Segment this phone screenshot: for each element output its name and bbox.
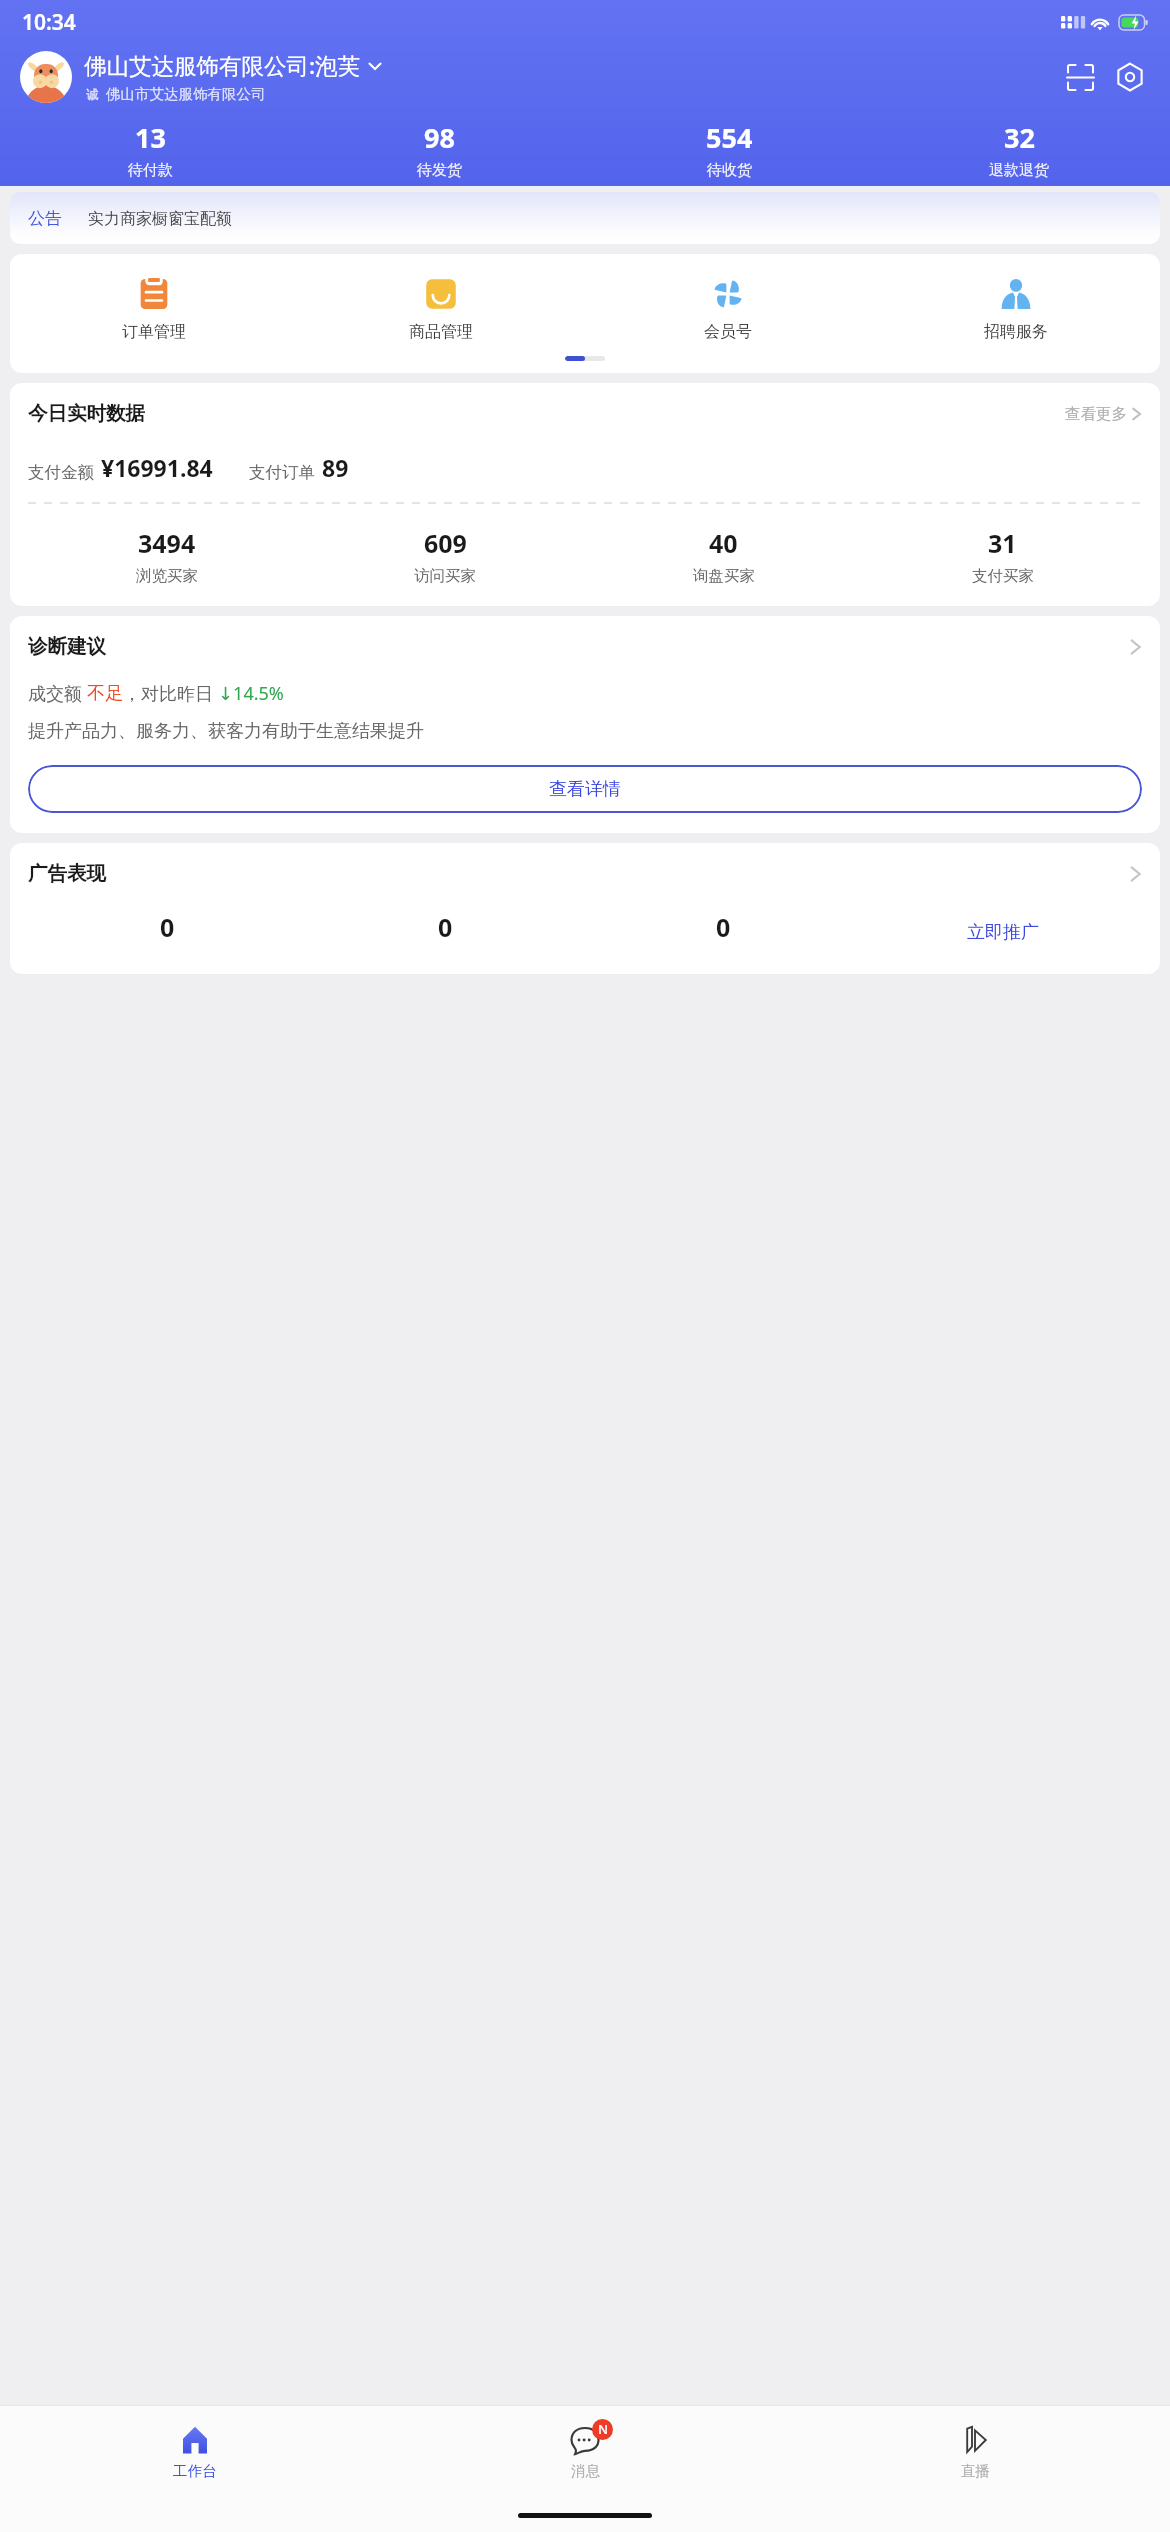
staticText: 浏览买家 [136,566,198,586]
staticText: N [598,2421,608,2438]
button[interactable]: 会员号 [584,276,872,342]
button[interactable]: 31 [863,526,1142,586]
button[interactable]: 公告 [10,192,1160,244]
staticText: 退款退货 [989,161,1049,180]
button[interactable]: 40 [584,526,863,586]
staticText: 工作台 [173,2462,217,2480]
button[interactable]: 商品管理 [297,276,584,342]
button[interactable]: 工作台 [0,2406,390,2498]
staticText: 支付订单 [249,462,315,483]
button[interactable]: 订单管理 [10,276,297,342]
staticText: 支付买家 [972,566,1034,586]
button[interactable]: 广告表现 [28,861,1142,886]
staticText: 13 [135,119,166,156]
staticText: 查看更多 [1065,404,1127,424]
button[interactable]: 98 [295,119,584,180]
staticText: 立即推广 [967,921,1039,944]
button[interactable]: 佛山艾达服饰有限公司:泡芙 [20,50,1150,103]
staticText: 商品管理 [409,322,473,342]
staticText: 佛山市艾达服饰有限公司 [106,85,266,103]
staticText: 0 [438,910,453,944]
staticText: 40 [709,526,738,560]
staticText: 佛山艾达服饰有限公司:泡芙 [84,50,361,81]
staticText: 订单管理 [122,322,186,342]
staticText: 3494 [138,526,196,560]
button[interactable]: 3494 [28,526,306,586]
staticText: 89 [322,452,349,483]
staticText: ↓14.5% [218,681,284,706]
staticText: 查看详情 [549,778,621,801]
staticText: 待付款 [128,161,173,180]
button[interactable]: 今日实时数据 [28,401,1142,426]
staticText: 31 [988,526,1017,560]
staticText: 广告表现 [28,861,106,886]
staticText: 支付金额 [28,462,94,483]
button[interactable]: 609 [306,526,584,586]
staticText: 成交额 [28,681,87,706]
button[interactable]: N [390,2406,780,2498]
staticText: 不足 [87,682,123,705]
button[interactable]: 13 [6,119,295,180]
staticText: 访问买家 [414,566,476,586]
staticText: 消息 [571,2462,600,2480]
staticText: 0 [716,910,731,944]
staticText: 10:34 [22,8,76,37]
button[interactable]: 招聘服务 [872,276,1160,342]
button[interactable]: 32 [874,119,1164,180]
staticText: 诊断建议 [28,634,106,659]
staticText: 554 [706,119,753,156]
staticText: ，对比昨日 [123,681,218,706]
staticText: 实力商家橱窗宝配额 [88,209,232,229]
staticText: 直播 [961,2462,990,2480]
staticText: 待发货 [417,161,462,180]
staticText: 609 [424,526,467,560]
staticText: 提升产品力、服务力、获客力有助于生意结果提升 [28,720,424,743]
staticText: 公告 [28,208,62,229]
staticText: ¥16991.84 [101,452,213,483]
staticText: 待收货 [707,161,752,180]
staticText: 今日实时数据 [28,401,145,426]
button[interactable]: 查看详情 [28,765,1142,813]
button[interactable]: 诊断建议 [28,634,1142,659]
staticText: 诚 [86,87,98,102]
staticText: 会员号 [704,322,752,342]
button[interactable]: 554 [584,119,874,180]
staticText: 招聘服务 [984,322,1048,342]
staticText: 98 [424,119,455,156]
staticText: 0 [160,910,175,944]
button[interactable]: 立即推广 [863,921,1142,944]
button[interactable]: Settings [1110,57,1150,97]
button[interactable]: 直播 [780,2406,1170,2498]
staticText: 询盘买家 [693,566,755,586]
staticText: 32 [1004,119,1035,156]
button[interactable]: Scan [1060,57,1100,97]
